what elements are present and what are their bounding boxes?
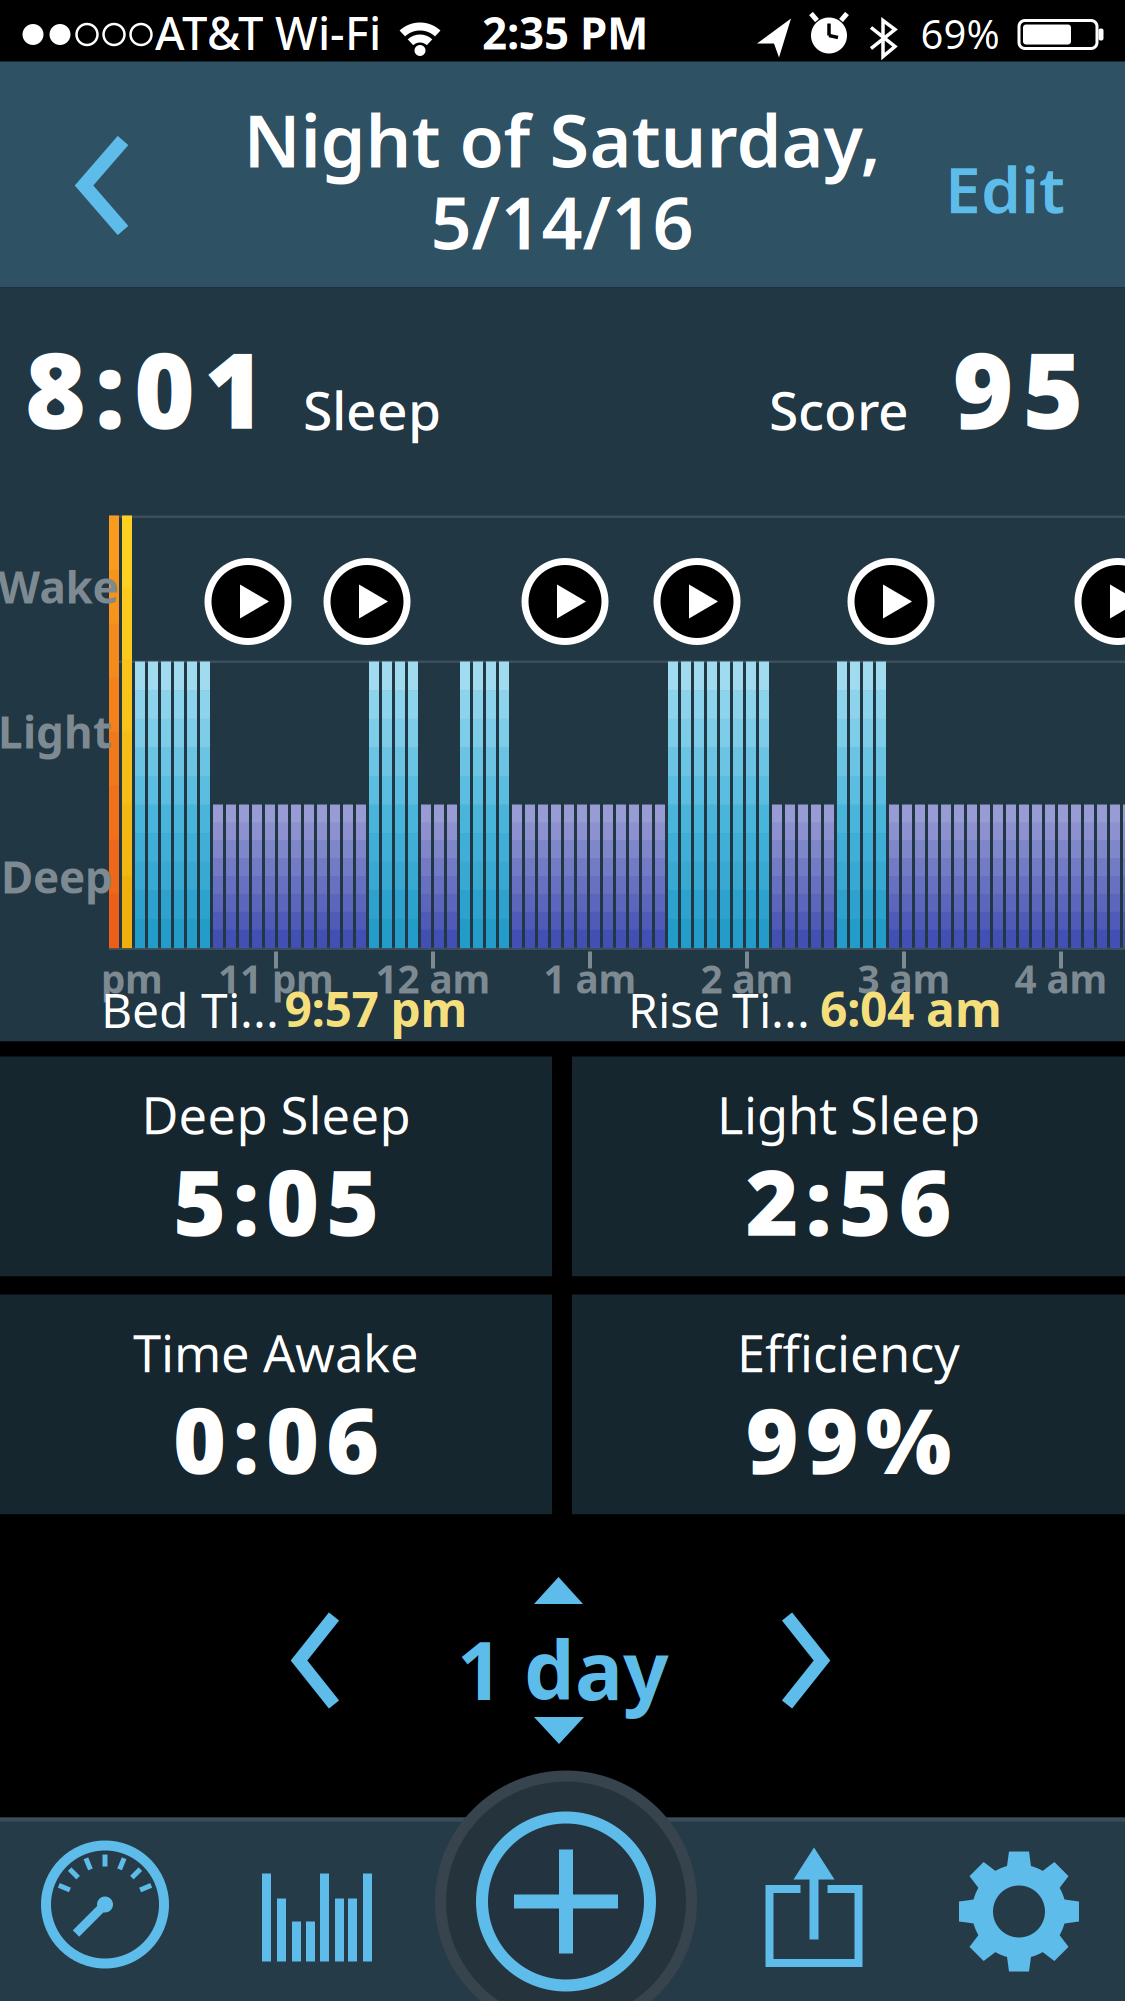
staticText: 6:04 am: [820, 977, 1002, 1040]
staticText: 95: [952, 319, 1083, 457]
staticText: 2 am: [700, 953, 793, 1004]
button[interactable]: Back: [75, 135, 135, 235]
button[interactable]: Play: [652, 556, 742, 646]
button[interactable]: Play: [322, 556, 412, 646]
staticText: Light: [0, 702, 112, 761]
button[interactable]: Edit: [945, 146, 1065, 231]
staticText: 8:01: [25, 319, 265, 457]
button[interactable]: Settings: [949, 1841, 1089, 1981]
staticText: AT&T Wi-Fi: [155, 2, 381, 63]
button[interactable]: Dashboard: [35, 1834, 175, 1974]
staticText: Rise Ti...: [628, 978, 810, 1041]
staticText: Wake: [0, 557, 118, 616]
staticText: pm: [101, 953, 163, 1004]
staticText: Light Sleep: [717, 1081, 980, 1148]
staticText: 5/14/16: [430, 174, 693, 269]
staticText: 3 am: [857, 953, 950, 1004]
staticText: Deep Sleep: [141, 1081, 410, 1148]
staticText: 5:05: [173, 1140, 379, 1261]
staticText: Deep: [1, 847, 113, 906]
button[interactable]: Previous: [289, 1610, 349, 1710]
staticText: 2:56: [745, 1140, 951, 1261]
staticText: 0:06: [173, 1378, 379, 1499]
staticText: Bed Ti...: [101, 978, 279, 1041]
staticText: 9:57 pm: [284, 977, 467, 1040]
staticText: Sleep: [303, 374, 441, 445]
button[interactable]: Next: [772, 1610, 832, 1710]
button[interactable]: 1 day: [452, 1574, 672, 1747]
button[interactable]: Play: [520, 556, 610, 646]
staticText: 2:35 PM: [482, 3, 648, 62]
staticText: 69%: [920, 7, 999, 60]
button[interactable]: Statistics: [256, 1867, 376, 1967]
staticText: Efficiency: [737, 1319, 960, 1386]
staticText: Edit: [945, 146, 1065, 231]
staticText: Score: [769, 374, 909, 445]
button[interactable]: Play: [846, 556, 936, 646]
staticText: 4 am: [1014, 953, 1107, 1004]
staticText: Time Awake: [133, 1319, 419, 1386]
staticText: 12 am: [375, 953, 490, 1004]
staticText: 11 pm: [218, 953, 334, 1004]
button[interactable]: Share: [754, 1840, 874, 1970]
staticText: Night of Saturday,: [243, 92, 880, 187]
button[interactable]: Play: [203, 556, 293, 646]
staticText: 1 am: [543, 953, 636, 1004]
button[interactable]: Play: [1073, 556, 1125, 646]
staticText: 1 day: [457, 1616, 669, 1722]
button[interactable]: Add: [431, 1766, 701, 2001]
staticText: 99%: [745, 1378, 951, 1499]
